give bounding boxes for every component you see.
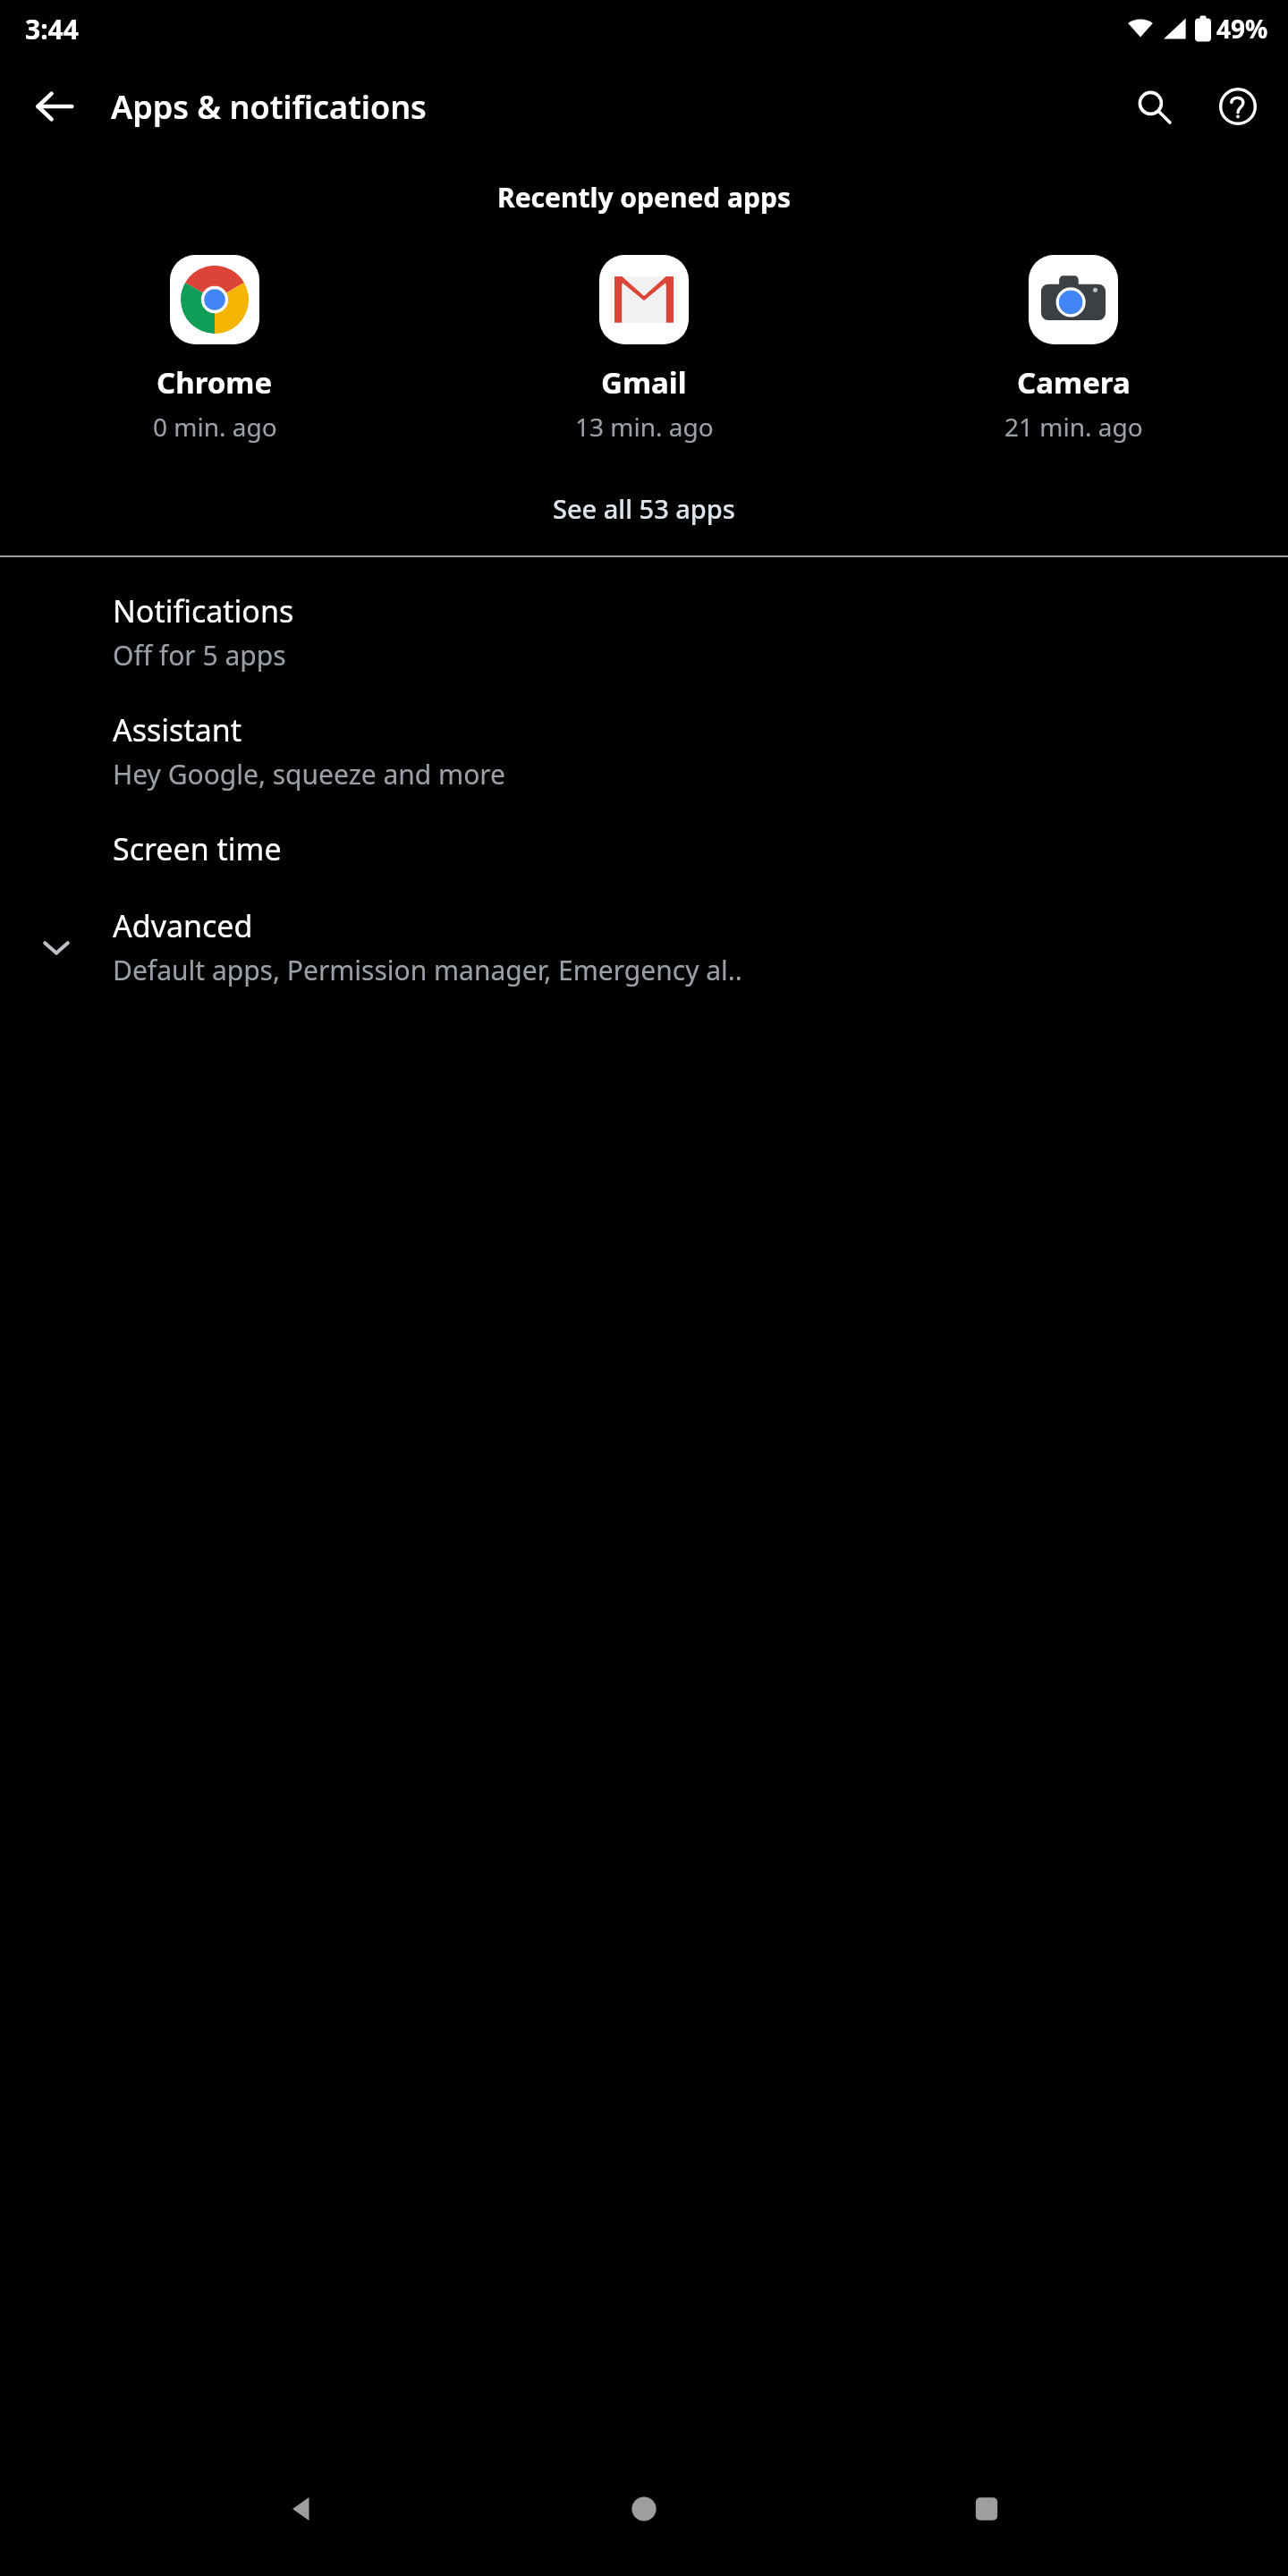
staticText: Apps & notifications [111, 85, 427, 129]
button[interactable]: Help [1206, 74, 1270, 139]
button[interactable]: Screen time [0, 810, 1288, 887]
button[interactable]: Chrome [0, 251, 429, 447]
staticText: Advanced [113, 905, 253, 946]
staticText: Screen time [113, 828, 282, 869]
staticText: 0 min. ago [153, 410, 277, 444]
staticText: 49% [1216, 12, 1268, 46]
button[interactable]: Back [262, 2469, 343, 2549]
button[interactable]: Search [1122, 74, 1186, 139]
button[interactable]: Assistant [0, 691, 1288, 810]
staticText: Notifications [113, 590, 294, 631]
button[interactable]: Notifications [0, 572, 1288, 691]
staticText: Hey Google, squeeze and more [113, 756, 505, 792]
staticText: 13 min. ago [575, 410, 714, 444]
staticText: Assistant [113, 709, 241, 750]
button[interactable]: See all 53 apps [0, 479, 1288, 537]
staticText: 21 min. ago [1004, 410, 1143, 444]
button[interactable]: Advanced [0, 887, 1288, 1006]
staticText: Off for 5 apps [113, 637, 286, 674]
button[interactable]: Back [23, 75, 86, 138]
button[interactable]: Gmail [429, 251, 859, 447]
staticText: 3:44 [25, 11, 79, 47]
staticText: Chrome [157, 362, 273, 402]
staticText: Camera [1017, 362, 1131, 402]
button[interactable]: Camera [859, 251, 1288, 447]
button[interactable]: Home [604, 2469, 684, 2549]
staticText: Recently opened apps [0, 179, 1288, 216]
staticText: Default apps, Permission manager, Emerge… [113, 952, 742, 988]
button[interactable]: Recents [946, 2469, 1027, 2549]
staticText: Gmail [601, 362, 687, 402]
staticText: See all 53 apps [553, 491, 735, 526]
